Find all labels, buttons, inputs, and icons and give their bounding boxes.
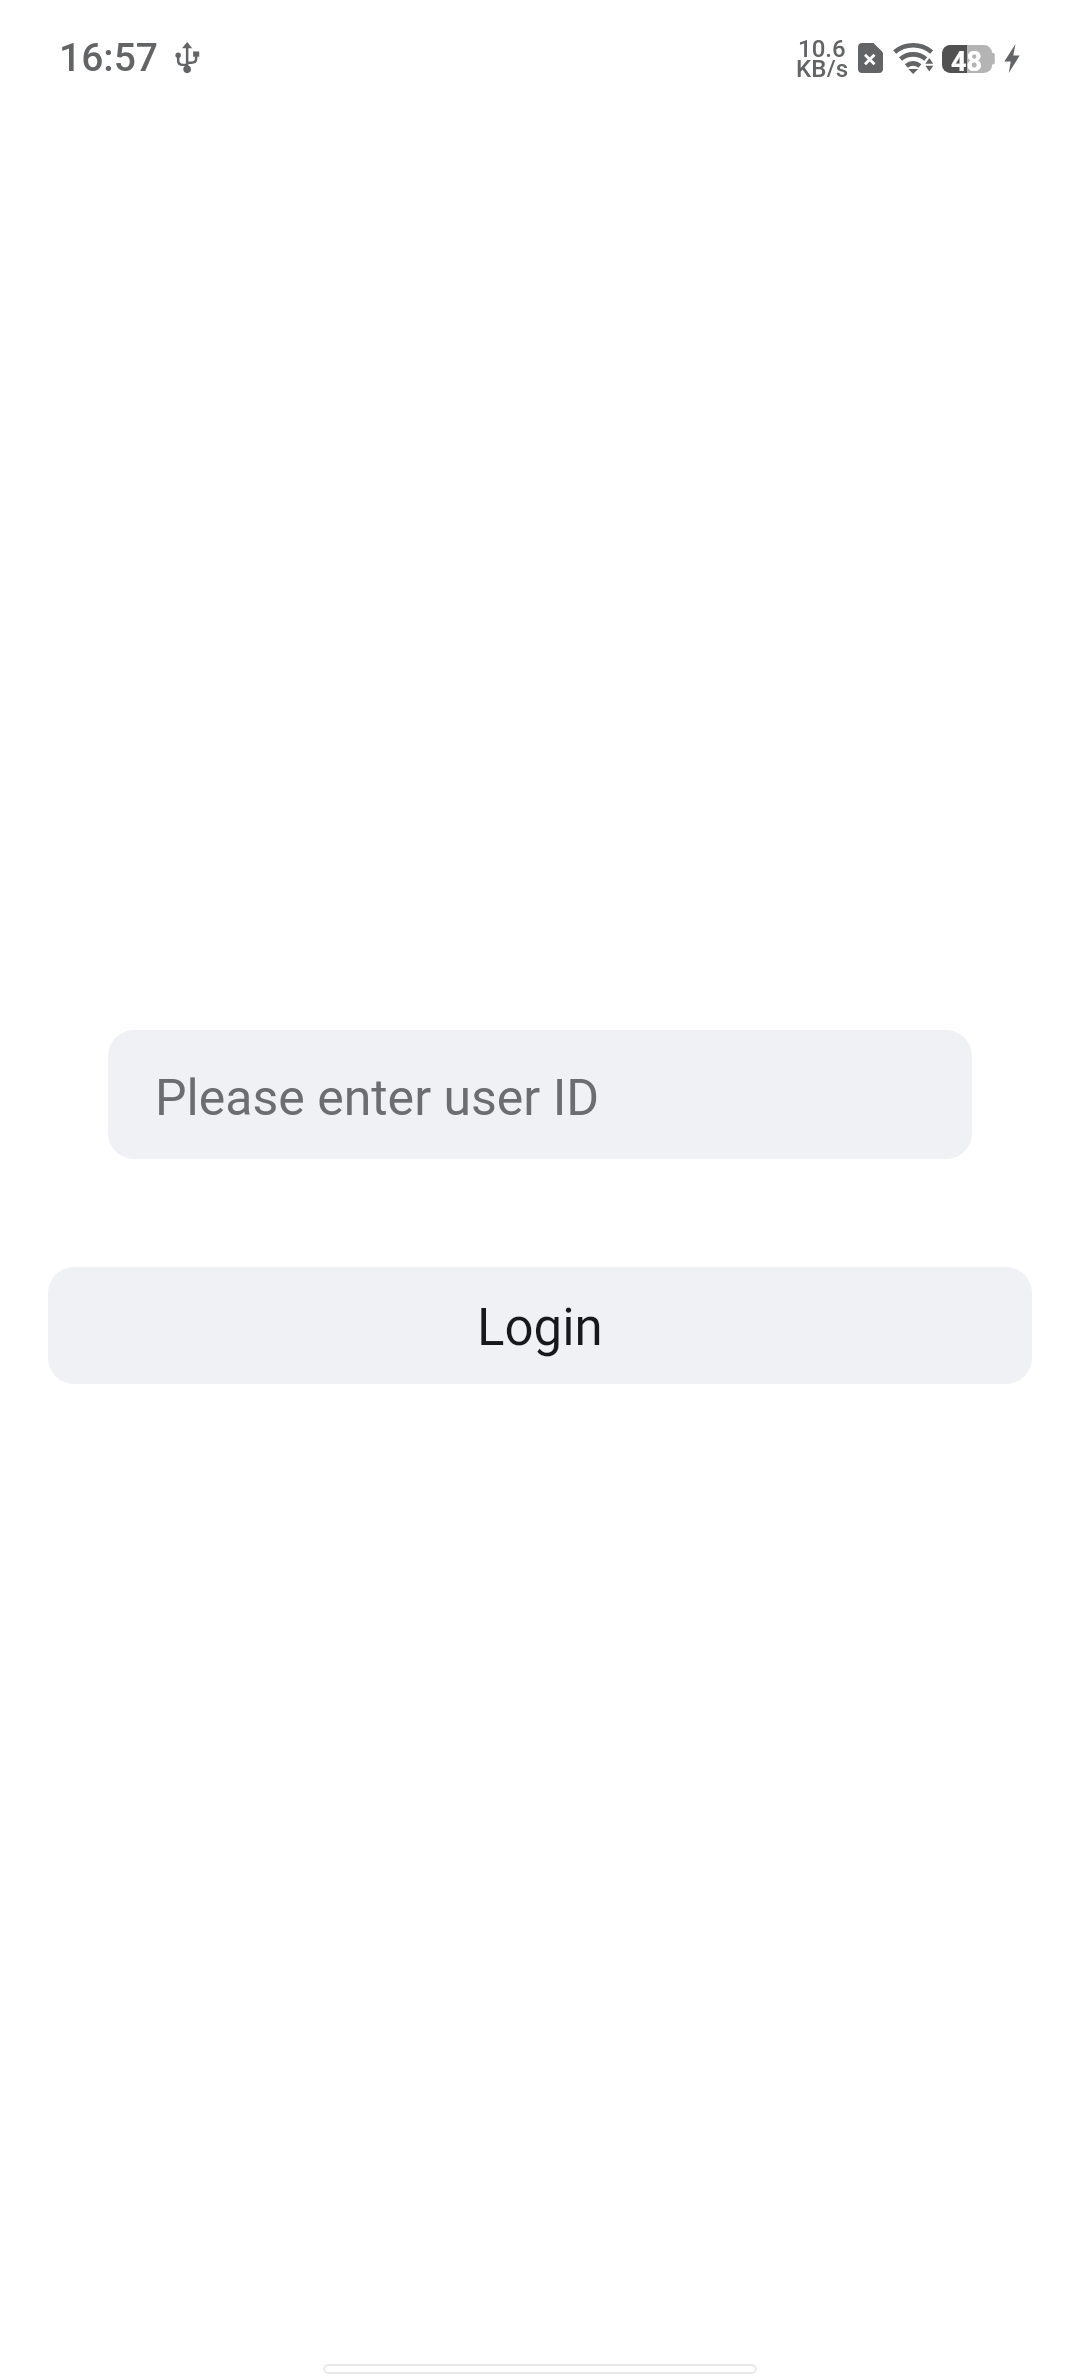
button[interactable]: Login — [48, 1267, 1032, 1384]
staticText: 16:57 — [59, 35, 159, 81]
staticText: Please enter user ID — [155, 1069, 600, 1128]
staticText: Login — [477, 1298, 603, 1358]
staticText: 48 — [951, 46, 982, 74]
other: Charging — [1004, 44, 1020, 73]
button[interactable]: Please enter user ID — [108, 1030, 972, 1159]
other: USB connected — [174, 42, 200, 74]
other: Wi-Fi connected — [897, 42, 935, 74]
button[interactable]: Home — [323, 2364, 757, 2374]
staticText: KB/s — [796, 55, 849, 77]
other: Battery 48 percent — [942, 45, 996, 73]
other: No SIM card — [858, 43, 883, 73]
staticText: 10.6 — [798, 35, 846, 57]
